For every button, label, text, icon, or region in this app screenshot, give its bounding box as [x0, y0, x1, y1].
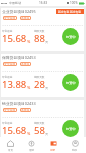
- staticText: 记录: [50, 148, 56, 151]
- staticText: 16:33: [39, 1, 48, 5]
- button[interactable]: 理财: [21, 137, 42, 153]
- button[interactable]: 企业贷款项目02495: [1, 8, 84, 51]
- button[interactable]: 投资中: [62, 74, 79, 91]
- staticText: 15.68: [2, 32, 27, 45]
- staticText: %: [27, 131, 31, 136]
- staticText: 企业贷款项目02495: [2, 9, 36, 14]
- staticText: 天: [45, 132, 49, 136]
- staticText: 28: [34, 78, 45, 91]
- button[interactable]: 保障贷款项目02453: [1, 54, 84, 97]
- staticText: 期限天数: [34, 29, 45, 32]
- staticText: 年化收益: [2, 121, 13, 124]
- staticText: 本息保: [21, 62, 30, 66]
- staticText: 本息保: [21, 108, 30, 112]
- staticText: 物业贷款项目02433: [2, 101, 36, 106]
- staticText: 投资中: [66, 81, 76, 85]
- staticText: 保障贷款项目02453: [2, 55, 36, 60]
- button[interactable]: 首页: [0, 137, 21, 153]
- staticText: 88: [34, 32, 45, 45]
- staticText: 中国移动: [9, 1, 21, 5]
- staticText: 安全保障: [4, 16, 16, 20]
- button[interactable]: 我的: [64, 137, 86, 153]
- button[interactable]: 投资中: [62, 120, 79, 137]
- staticText: 安全保障: [4, 62, 16, 66]
- button[interactable]: 记录: [42, 137, 64, 153]
- staticText: 13.88: [2, 78, 27, 91]
- button[interactable]: 物业贷款项目02433: [1, 100, 84, 137]
- staticText: 首页: [8, 148, 14, 151]
- button[interactable]: 投资中: [62, 28, 79, 45]
- staticText: 年化收益: [2, 29, 13, 32]
- staticText: 新手专享 新手专享: [58, 10, 82, 14]
- staticText: 天: [45, 86, 49, 90]
- staticText: 本息保: [21, 16, 30, 20]
- staticText: 15.68: [2, 124, 27, 137]
- staticText: 投资中: [66, 127, 76, 131]
- staticText: 我的: [72, 148, 78, 151]
- staticText: 投资中: [66, 35, 76, 39]
- staticText: %: [27, 39, 31, 44]
- staticText: 期限天数: [34, 75, 45, 78]
- staticText: %: [27, 85, 31, 90]
- staticText: 期限天数: [34, 121, 45, 124]
- staticText: 安全保障: [4, 108, 16, 112]
- staticText: 100%: [70, 1, 78, 5]
- staticText: 理财: [29, 148, 35, 151]
- staticText: 58: [34, 124, 45, 137]
- staticText: 年化收益: [2, 75, 13, 78]
- staticText: 天: [45, 40, 49, 44]
